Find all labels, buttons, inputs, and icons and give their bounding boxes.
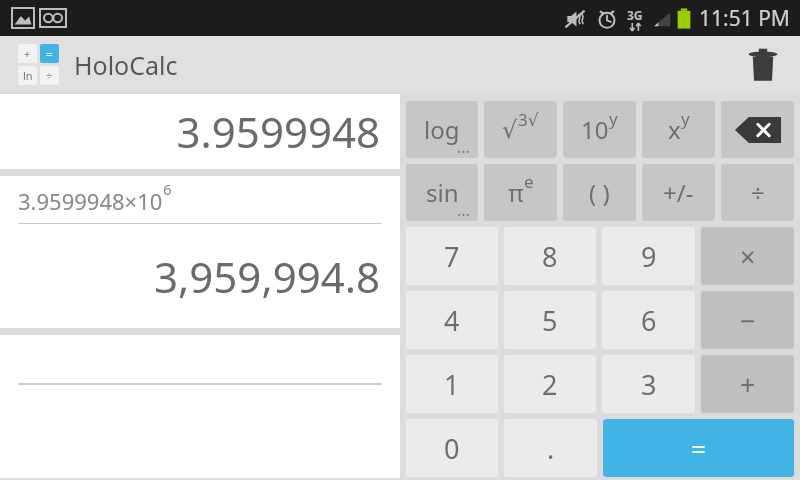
button[interactable]: π [484, 164, 557, 221]
staticText: 8 [542, 238, 558, 275]
staticText: . [547, 430, 555, 467]
button[interactable]: 3 [602, 355, 695, 413]
staticText: − [740, 302, 756, 339]
button[interactable]: sin [406, 164, 478, 221]
staticText: y [609, 107, 618, 130]
staticText: 3G [627, 7, 643, 23]
button[interactable]: 9 [602, 227, 695, 285]
staticText: 3√ [518, 108, 539, 131]
staticText: × [740, 238, 756, 275]
staticText: HoloCalc [74, 48, 178, 82]
button[interactable]: Clear history [726, 36, 800, 93]
staticText: = [46, 46, 53, 61]
button[interactable] [721, 101, 794, 158]
button[interactable]: − [701, 291, 794, 349]
button[interactable]: 8 [504, 227, 596, 285]
button[interactable]: 2 [504, 355, 596, 413]
button[interactable]: 0 [406, 419, 498, 477]
staticText: ... [457, 199, 470, 221]
staticText: + [740, 366, 756, 403]
button[interactable]: 6 [602, 291, 695, 349]
staticText: 3.9599948×10 [18, 186, 163, 216]
staticText: sin [426, 176, 459, 209]
button[interactable]: ÷ [721, 164, 794, 221]
staticText: 4 [444, 302, 460, 339]
staticText: + [24, 46, 31, 61]
staticText: 7 [444, 238, 460, 275]
staticText: ... [457, 136, 470, 158]
button[interactable]: + [701, 355, 794, 413]
staticText: 9 [641, 238, 657, 275]
staticText: ÷ [46, 68, 53, 83]
button[interactable]: = [603, 419, 794, 477]
button[interactable]: √ [484, 101, 557, 158]
staticText: x [668, 113, 681, 146]
staticText: y [681, 107, 690, 130]
staticText: +/- [663, 176, 694, 209]
button[interactable]: +/- [642, 164, 715, 221]
button[interactable]: x [642, 101, 715, 158]
staticText: 1 [444, 366, 460, 403]
staticText: ( ) [589, 176, 610, 209]
staticText: 11:51 PM [699, 4, 790, 33]
staticText: 2 [542, 366, 558, 403]
button[interactable]: × [701, 227, 794, 285]
staticText: ln [23, 68, 33, 83]
button[interactable]: 7 [406, 227, 498, 285]
staticText: log [424, 113, 460, 146]
staticText: 3.9599948 [0, 103, 380, 160]
staticText: 3,959,994.8 [0, 248, 380, 305]
button[interactable]: log [406, 101, 478, 158]
button[interactable]: 5 [504, 291, 596, 349]
staticText: √ [502, 116, 518, 144]
button[interactable]: ( ) [563, 164, 636, 221]
staticText: = [691, 431, 706, 466]
button[interactable]: 1 [406, 355, 498, 413]
staticText: 5 [542, 302, 558, 339]
staticText: ÷ [751, 176, 765, 209]
staticText: 6 [641, 302, 657, 339]
button[interactable]: . [504, 419, 597, 477]
staticText: 10 [581, 113, 609, 146]
staticText: e [524, 170, 534, 193]
staticText: 0 [444, 430, 460, 467]
button[interactable]: 10 [563, 101, 636, 158]
staticText: 3 [641, 366, 657, 403]
staticText: 6 [163, 179, 172, 199]
staticText: π [508, 176, 524, 209]
button[interactable]: 4 [406, 291, 498, 349]
